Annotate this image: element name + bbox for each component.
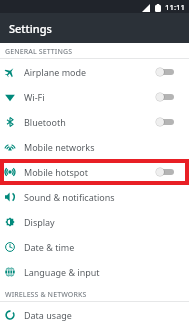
button[interactable]: Data usage: [0, 302, 189, 327]
button[interactable]: Display: [0, 209, 189, 234]
staticText: GENERAL SETTINGS: [5, 47, 73, 57]
staticText: Display: [24, 216, 55, 228]
staticText: WIRELESS & NETWORKS: [5, 290, 87, 300]
button[interactable]: Date & time: [0, 234, 189, 259]
button[interactable]: Language & input: [0, 259, 189, 284]
staticText: Settings: [9, 21, 52, 36]
staticText: Bluetooth: [24, 116, 66, 128]
staticText: Language & input: [24, 266, 100, 278]
staticText: 11:11: [165, 2, 185, 13]
staticText: Mobile hotspot: [24, 166, 88, 178]
button[interactable]: Mobile networks: [0, 134, 189, 159]
staticText: Airplane mode: [24, 66, 87, 78]
button[interactable]: Wi-Fi: [0, 84, 189, 109]
staticText: Sound & notifications: [24, 191, 115, 203]
button[interactable]: Bluetooth: [0, 109, 189, 134]
staticText: Data usage: [24, 309, 72, 321]
staticText: Wi-Fi: [24, 91, 45, 103]
button[interactable]: Sound & notifications: [0, 184, 189, 209]
staticText: Mobile networks: [24, 141, 95, 153]
button[interactable]: Mobile hotspot: [0, 159, 189, 184]
staticText: Date & time: [24, 241, 75, 253]
button[interactable]: Airplane mode: [0, 59, 189, 84]
